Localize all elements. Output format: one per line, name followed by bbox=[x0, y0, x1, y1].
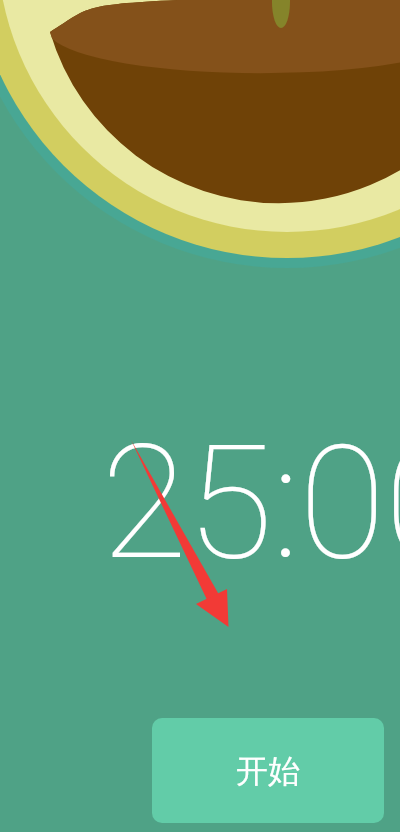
staticText: 开始 bbox=[236, 751, 300, 791]
button[interactable]: 开始 bbox=[152, 718, 384, 823]
staticText: 25:00 bbox=[101, 410, 400, 595]
